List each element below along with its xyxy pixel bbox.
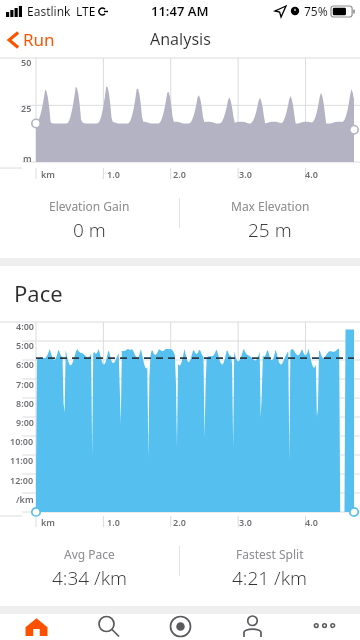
- staticText: 5:00: [16, 339, 34, 351]
- staticText: Avg Pace: [64, 546, 115, 562]
- staticText: Fastest Split: [236, 546, 304, 562]
- staticText: 2.0: [173, 516, 186, 528]
- staticText: Pace: [14, 278, 63, 308]
- staticText: /km: [16, 493, 34, 505]
- staticText: Analysis: [150, 28, 211, 50]
- staticText: 12:00: [10, 474, 34, 486]
- staticText: 4:00: [16, 320, 34, 332]
- staticText: 3.0: [239, 168, 252, 180]
- staticText: Max Elevation: [231, 198, 310, 214]
- button[interactable]: Feed: [0, 614, 72, 640]
- staticText: 50: [21, 56, 32, 68]
- staticText: 4:21 /km: [232, 565, 308, 591]
- staticText: 25 m: [248, 217, 292, 243]
- staticText: 7:00: [16, 378, 34, 390]
- staticText: 0 m: [73, 217, 106, 243]
- staticText: Elevation Gain: [49, 198, 130, 214]
- staticText: 6:00: [16, 358, 34, 370]
- button[interactable]: Record: [144, 614, 216, 640]
- staticText: 1.0: [107, 516, 120, 528]
- button[interactable]: Run: [0, 24, 65, 55]
- staticText: 75%: [304, 3, 328, 19]
- button[interactable]: Profile: [216, 614, 288, 640]
- staticText: 11:00: [10, 454, 34, 466]
- staticText: LTE: [76, 3, 96, 19]
- staticText: 4.0: [305, 516, 318, 528]
- staticText: m: [23, 152, 32, 164]
- staticText: 2.0: [173, 168, 186, 180]
- staticText: Eastlink: [27, 3, 71, 19]
- staticText: 8:00: [16, 397, 34, 409]
- staticText: 10:00: [10, 435, 34, 447]
- staticText: km: [41, 516, 55, 528]
- staticText: 9:00: [16, 416, 34, 428]
- staticText: 11:47 AM: [151, 2, 209, 20]
- staticText: Run: [23, 28, 55, 51]
- button[interactable]: Explore: [72, 614, 144, 640]
- staticText: 3.0: [239, 516, 252, 528]
- staticText: 1.0: [107, 168, 120, 180]
- staticText: km: [41, 168, 55, 180]
- button[interactable]: More: [288, 614, 360, 640]
- staticText: 25: [21, 102, 32, 114]
- staticText: 4:34 /km: [52, 565, 128, 591]
- staticText: 4.0: [305, 168, 318, 180]
